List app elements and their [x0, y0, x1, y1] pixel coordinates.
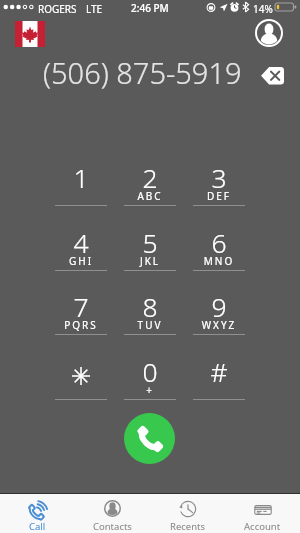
button[interactable]: Contacts: [75, 494, 150, 533]
button[interactable]: 0: [124, 343, 176, 400]
staticText: (506) 875-5919: [43, 53, 242, 92]
staticText: 0: [124, 354, 176, 390]
staticText: 14%: [253, 2, 273, 16]
button[interactable]: 6: [193, 214, 245, 271]
staticText: ROGERS: [38, 2, 77, 16]
staticText: WXYZ: [193, 318, 245, 332]
staticText: PQRS: [55, 318, 107, 332]
staticText: #: [193, 354, 245, 390]
staticText: 2:46 PM: [131, 1, 169, 15]
button[interactable]: Call: [0, 494, 75, 533]
button[interactable]: #: [193, 343, 245, 400]
staticText: 2: [124, 160, 176, 196]
staticText: JKL: [124, 254, 176, 268]
button[interactable]: Recents: [150, 494, 225, 533]
button[interactable]: 3: [193, 149, 245, 206]
staticText: Call: [29, 520, 46, 533]
staticText: Contacts: [93, 520, 132, 533]
staticText: Recents: [170, 520, 206, 533]
button[interactable]: [55, 343, 107, 400]
staticText: 9: [193, 289, 245, 325]
button[interactable]: Account: [225, 494, 300, 533]
staticText: 3: [193, 160, 245, 196]
staticText: 5: [124, 225, 176, 261]
staticText: MNO: [193, 254, 245, 268]
button[interactable]: 7: [55, 278, 107, 335]
button[interactable]: 1: [55, 149, 107, 206]
staticText: 4: [55, 225, 107, 261]
staticText: LTE: [86, 2, 103, 16]
staticText: +: [124, 383, 176, 397]
staticText: 1: [55, 160, 107, 196]
button[interactable]: Delete: [257, 63, 288, 88]
staticText: TUV: [124, 318, 176, 332]
button[interactable]: 5: [124, 214, 176, 271]
button[interactable]: 2: [124, 149, 176, 206]
staticText: 7: [55, 289, 107, 325]
button[interactable]: 4: [55, 214, 107, 271]
staticText: DEF: [193, 189, 245, 203]
button[interactable]: Account: [255, 19, 283, 47]
button[interactable]: 8: [124, 278, 176, 335]
button[interactable]: 9: [193, 278, 245, 335]
staticText: ABC: [124, 189, 176, 203]
button[interactable]: Call: [124, 413, 175, 464]
staticText: Account: [244, 520, 281, 533]
staticText: 8: [124, 289, 176, 325]
staticText: 6: [193, 225, 245, 261]
staticText: GHI: [55, 254, 107, 268]
